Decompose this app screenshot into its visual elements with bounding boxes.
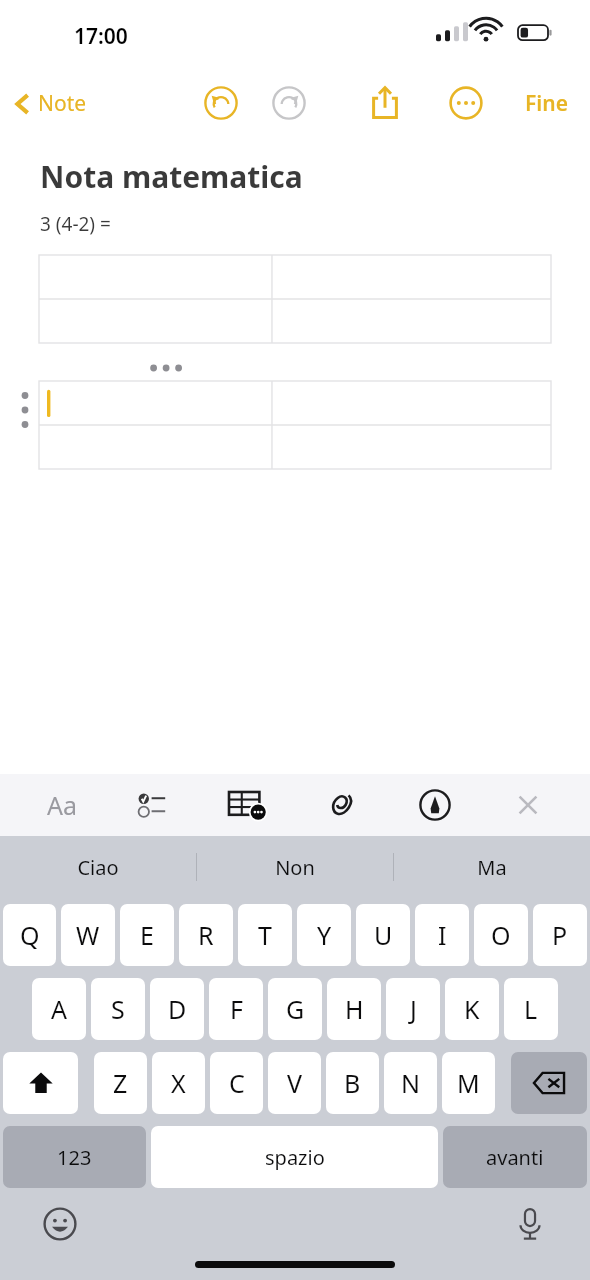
staticText: spazio xyxy=(265,1144,325,1171)
button[interactable]: I xyxy=(415,904,469,966)
button[interactable]: Ciao xyxy=(0,836,196,898)
staticText: O xyxy=(491,918,511,952)
staticText: J xyxy=(410,992,417,1026)
button[interactable]: P xyxy=(533,904,587,966)
staticText: B xyxy=(344,1066,361,1100)
button[interactable]: Y xyxy=(297,904,351,966)
button[interactable]: L xyxy=(504,978,558,1040)
staticText: Z xyxy=(113,1066,128,1100)
staticText: E xyxy=(140,918,154,952)
staticText: A xyxy=(51,992,67,1026)
staticText: L xyxy=(524,992,538,1026)
button[interactable]: D xyxy=(150,978,204,1040)
button[interactable]: J xyxy=(386,978,440,1040)
staticText: R xyxy=(198,918,214,952)
button[interactable]: avanti xyxy=(443,1126,587,1188)
staticText: I xyxy=(438,918,447,952)
staticText: T xyxy=(258,918,272,952)
staticText: G xyxy=(286,992,305,1026)
staticText: Aa xyxy=(47,788,78,822)
button[interactable]: C xyxy=(210,1052,263,1114)
button[interactable]: Share xyxy=(362,80,408,126)
button[interactable]: K xyxy=(445,978,499,1040)
staticText: P xyxy=(552,918,568,952)
staticText: K xyxy=(464,992,480,1026)
staticText: M xyxy=(457,1066,480,1100)
staticText: F xyxy=(230,992,243,1026)
button[interactable]: H xyxy=(327,978,381,1040)
staticText: U xyxy=(374,918,393,952)
button[interactable]: T xyxy=(238,904,292,966)
button[interactable]: X xyxy=(152,1052,205,1114)
staticText: avanti xyxy=(486,1144,544,1171)
button[interactable]: Redo xyxy=(266,80,312,126)
button[interactable]: 123 xyxy=(3,1126,146,1188)
button[interactable]: Attach xyxy=(307,777,377,833)
button[interactable]: More xyxy=(443,80,489,126)
staticText: 3 (4-2) = xyxy=(40,211,111,237)
button[interactable]: A xyxy=(32,978,86,1040)
button[interactable]: Fine xyxy=(517,83,576,124)
staticText: X xyxy=(171,1066,186,1100)
button[interactable]: E xyxy=(120,904,174,966)
button[interactable]: W xyxy=(61,904,115,966)
staticText: D xyxy=(168,992,187,1026)
button[interactable]: spazio xyxy=(151,1126,438,1188)
button[interactable]: M xyxy=(442,1052,495,1114)
button[interactable]: N xyxy=(384,1052,437,1114)
button[interactable]: Q xyxy=(3,904,56,966)
button[interactable]: U xyxy=(356,904,410,966)
button[interactable]: Checklist xyxy=(120,777,190,833)
staticText: S xyxy=(111,992,125,1026)
staticText: N xyxy=(401,1066,421,1100)
staticText: Y xyxy=(317,918,332,952)
button[interactable]: Non xyxy=(197,836,393,898)
button[interactable]: F xyxy=(209,978,263,1040)
staticText: Note xyxy=(38,89,87,118)
button[interactable]: Z xyxy=(94,1052,147,1114)
staticText: Ciao xyxy=(77,854,119,881)
button[interactable]: Shift xyxy=(3,1052,78,1114)
button[interactable]: Note xyxy=(8,83,93,124)
button[interactable]: R xyxy=(179,904,233,966)
button[interactable]: Table xyxy=(213,777,283,833)
staticText: C xyxy=(229,1066,245,1100)
button[interactable]: B xyxy=(326,1052,379,1114)
button[interactable]: Ma xyxy=(394,836,590,898)
button[interactable]: Emoji xyxy=(36,1200,84,1248)
staticText: V xyxy=(287,1066,303,1100)
staticText: 17:00 xyxy=(74,22,128,51)
staticText: 123 xyxy=(57,1144,92,1171)
staticText: Q xyxy=(20,918,40,952)
staticText: Fine xyxy=(525,89,568,118)
staticText: H xyxy=(345,992,364,1026)
button[interactable]: Backspace xyxy=(511,1052,587,1114)
button[interactable]: V xyxy=(268,1052,321,1114)
button[interactable]: O xyxy=(474,904,528,966)
staticText: Non xyxy=(275,854,315,881)
button[interactable]: Markup xyxy=(400,777,470,833)
button[interactable]: Text format xyxy=(27,777,97,833)
button[interactable]: Dictation xyxy=(506,1200,554,1248)
staticText: Ma xyxy=(477,854,507,881)
button[interactable]: S xyxy=(91,978,145,1040)
button[interactable]: Undo xyxy=(198,80,244,126)
button[interactable]: Close keyboard xyxy=(493,777,563,833)
staticText: W xyxy=(76,918,100,952)
staticText: Nota matematica xyxy=(40,156,303,197)
button[interactable]: G xyxy=(268,978,322,1040)
